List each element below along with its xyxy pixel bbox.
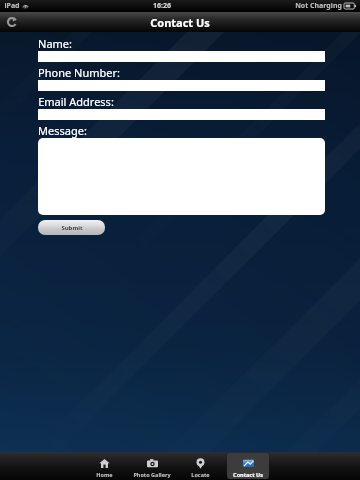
button[interactable]: Submit: [38, 220, 105, 235]
staticText: 16:26: [153, 1, 171, 11]
staticText: iPad: [4, 1, 20, 11]
button[interactable]: Photo Gallery: [131, 453, 173, 479]
staticText: Phone Number:: [38, 65, 120, 80]
staticText: Email Address:: [38, 94, 114, 109]
button[interactable]: Locate: [179, 453, 221, 479]
staticText: Photo Gallery: [133, 471, 171, 478]
staticText: Submit: [61, 224, 83, 232]
staticText: Contact Us: [150, 15, 210, 30]
button[interactable]: Contact Us: [227, 453, 269, 479]
staticText: Locate: [191, 471, 210, 478]
button[interactable]: Home: [83, 453, 125, 479]
staticText: Message:: [38, 123, 87, 138]
staticText: Name:: [38, 36, 72, 51]
staticText: Contact Us: [233, 471, 263, 478]
staticText: Not Charging: [295, 1, 342, 11]
staticText: Home: [96, 471, 113, 478]
button[interactable]: [38, 138, 325, 215]
button[interactable]: Refresh: [4, 14, 20, 30]
